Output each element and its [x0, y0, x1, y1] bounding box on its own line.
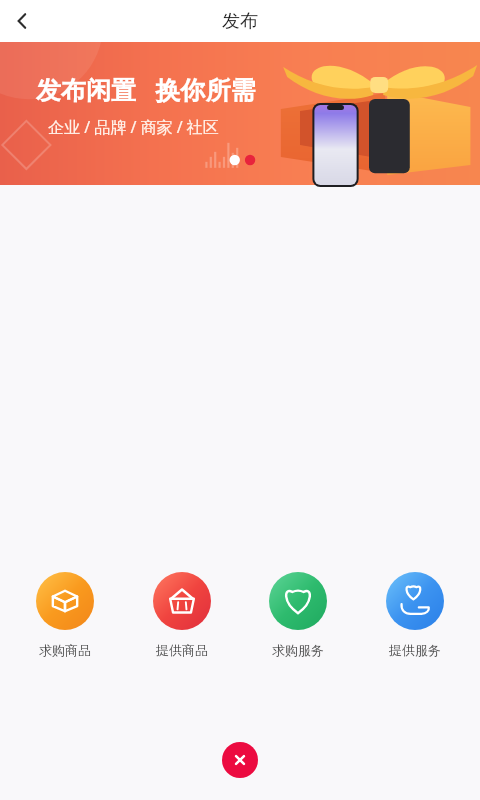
staticText: 提供商品 [156, 642, 208, 658]
button[interactable]: Back [0, 0, 44, 42]
button[interactable]: 提供商品 [130, 572, 234, 658]
button[interactable]: 提供服务 [363, 572, 467, 658]
staticText: 求购服务 [272, 642, 324, 658]
staticText: 发布闲置 换你所需 [36, 72, 256, 106]
staticText: 提供服务 [389, 642, 441, 658]
button[interactable]: 求购商品 [13, 572, 117, 658]
button[interactable]: Close [222, 742, 258, 778]
staticText: 发布 [222, 10, 258, 33]
staticText: 求购商品 [39, 642, 91, 658]
staticText: 企业 / 品牌 / 商家 / 社区 [48, 116, 219, 138]
button[interactable]: 求购服务 [246, 572, 350, 658]
